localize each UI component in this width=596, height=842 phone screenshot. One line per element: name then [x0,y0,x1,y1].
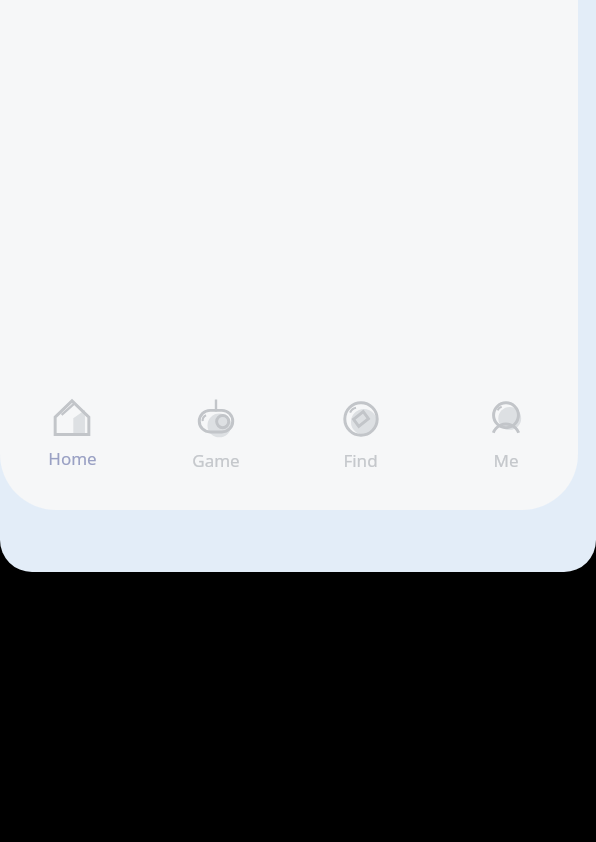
staticText: Find [343,449,378,472]
button[interactable]: Home [0,388,144,470]
button[interactable]: Game [144,388,288,472]
other: Game [189,392,243,446]
other: Home [45,392,99,446]
staticText: Me [493,449,519,472]
other: Find [334,392,388,446]
button[interactable]: Find [288,388,433,472]
staticText: Game [192,449,240,472]
button[interactable]: Me [433,388,578,472]
staticText: Home [48,447,97,470]
other: Me [479,392,533,446]
